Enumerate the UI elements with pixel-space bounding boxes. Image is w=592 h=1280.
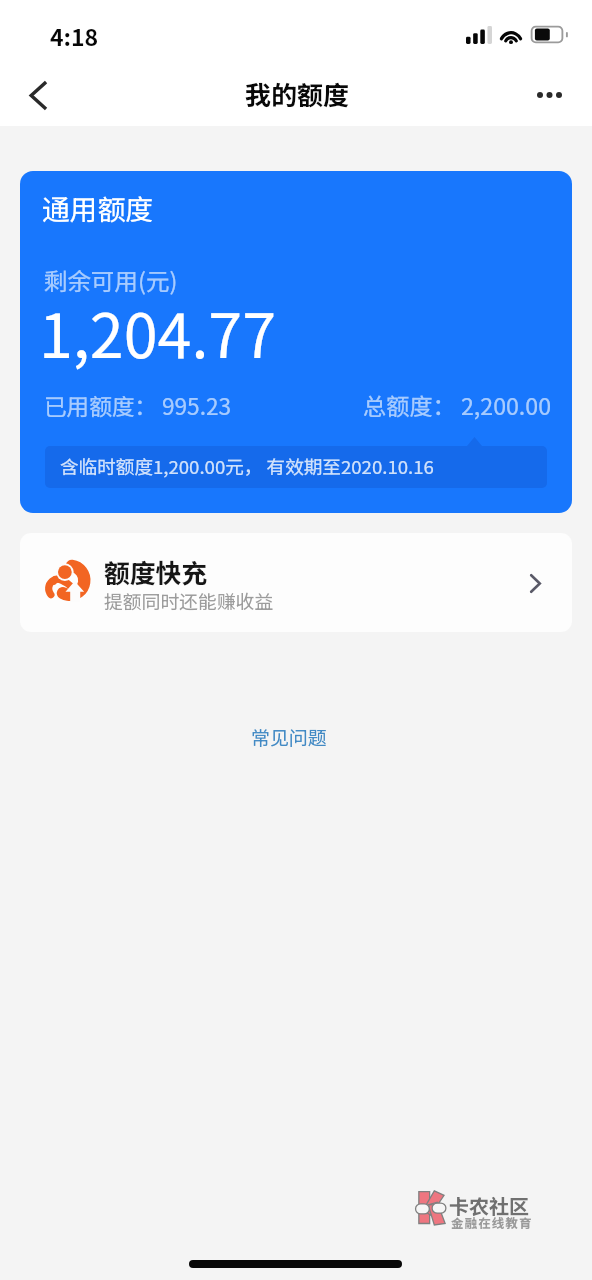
staticText: 已用额度： 995.23 — [44, 390, 232, 421]
staticText: 提额同时还能赚收益 — [104, 589, 274, 615]
button[interactable]: Back — [8, 70, 68, 120]
staticText: 4:18 — [50, 21, 99, 52]
button[interactable]: 通用额度 — [20, 171, 572, 513]
button[interactable]: More options — [524, 70, 574, 120]
staticText: 总额度： 2,200.00 — [363, 390, 552, 422]
staticText: 剩余可用(元) — [44, 264, 178, 296]
staticText: 常见问题 — [251, 724, 327, 750]
staticText: 我的额度 — [245, 77, 350, 112]
staticText: 含临时额度1,200.00元， 有效期至2020.10.16 — [60, 454, 434, 479]
staticText: 额度快充 — [104, 555, 208, 590]
button[interactable]: 额度快充 — [20, 533, 572, 632]
staticText: 金融在线教育 — [451, 1214, 533, 1231]
staticText: 通用额度 — [42, 190, 154, 228]
button[interactable]: 常见问题 — [241, 719, 337, 755]
staticText: 1,204.77 — [39, 292, 277, 375]
staticText: 卡农社区 — [449, 1192, 529, 1219]
